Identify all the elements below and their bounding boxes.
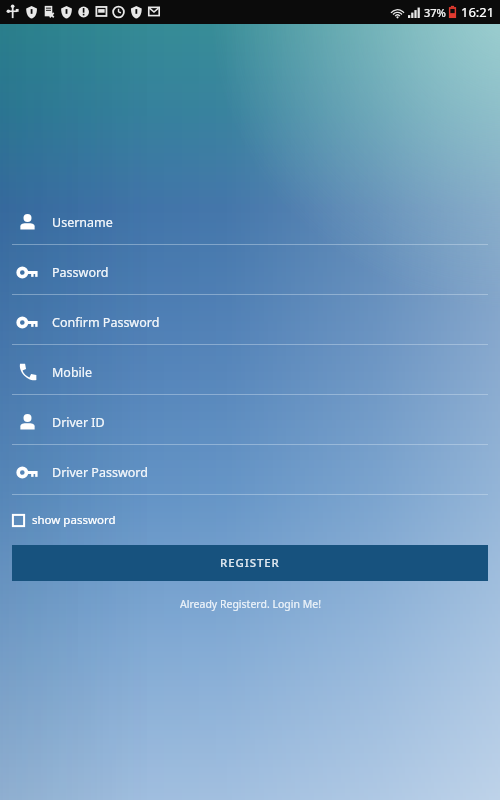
staticText: 37% bbox=[424, 5, 446, 20]
button[interactable]: REGISTER bbox=[12, 545, 488, 581]
staticText: Confirm Password bbox=[52, 314, 160, 331]
staticText: Driver Password bbox=[52, 464, 148, 481]
button[interactable]: Mobile bbox=[0, 351, 500, 401]
button[interactable]: show password bbox=[12, 510, 126, 530]
button[interactable]: Password bbox=[0, 251, 500, 301]
button[interactable]: Confirm Password bbox=[0, 301, 500, 351]
button[interactable]: Driver ID bbox=[0, 401, 500, 451]
button[interactable]: Already Registerd. Login Me! bbox=[172, 594, 329, 614]
button[interactable]: Driver Password bbox=[0, 451, 500, 501]
staticText: show password bbox=[32, 512, 116, 528]
staticText: Mobile bbox=[52, 364, 93, 381]
staticText: 16:21 bbox=[461, 3, 495, 21]
button[interactable]: Username bbox=[0, 201, 500, 251]
staticText: Password bbox=[52, 264, 109, 281]
staticText: Driver ID bbox=[52, 414, 105, 431]
staticText: REGISTER bbox=[220, 555, 280, 571]
staticText: Username bbox=[52, 214, 113, 231]
